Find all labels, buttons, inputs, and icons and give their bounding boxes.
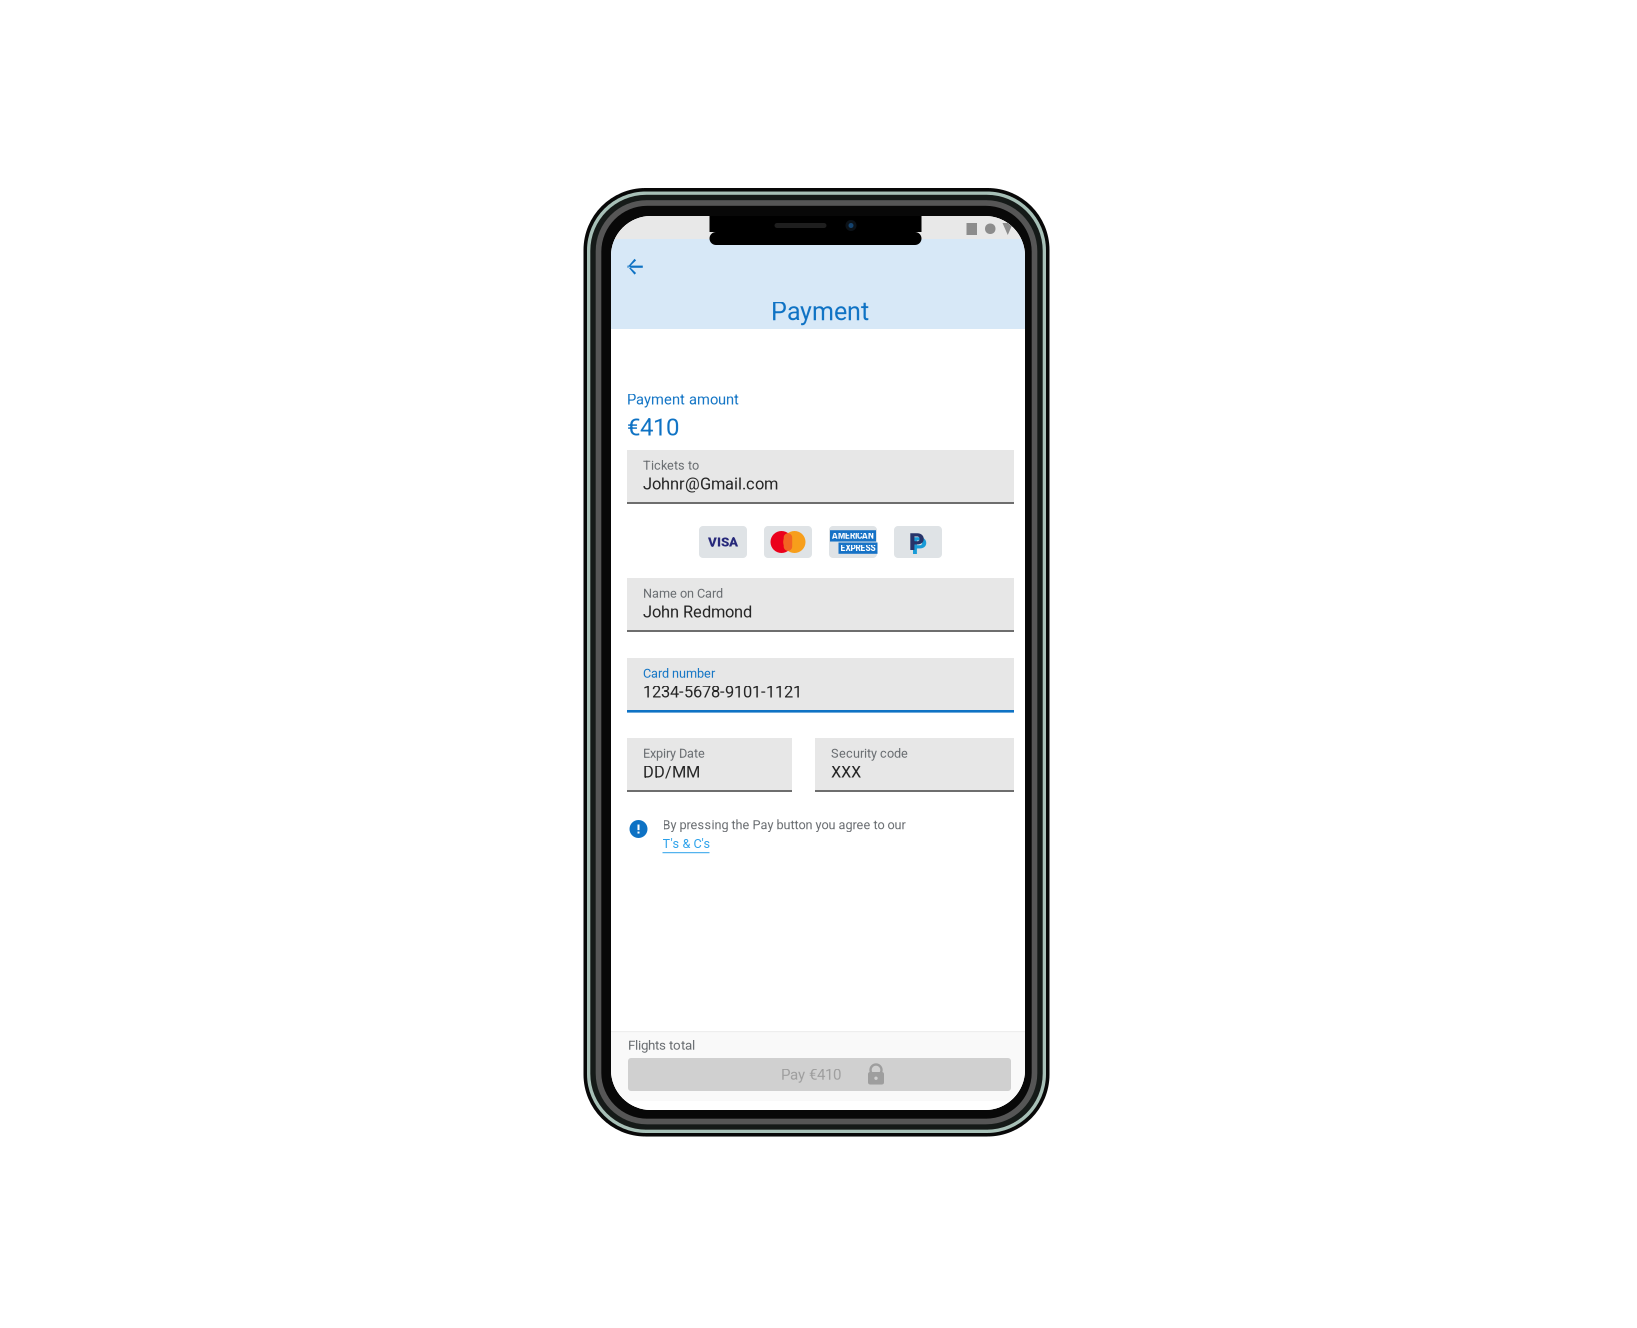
button[interactable]: Back — [626, 258, 643, 275]
staticText: €410 — [627, 413, 679, 441]
button[interactable]: Pay €410 — [628, 1058, 1011, 1091]
staticText: P — [909, 528, 925, 556]
staticText: Tickets to — [643, 458, 699, 473]
staticText: John Redmond — [643, 602, 752, 621]
staticText: Johnr@Gmail.com — [643, 474, 778, 493]
staticText: AMERICAN — [832, 531, 874, 541]
staticText: DD/MM — [643, 762, 700, 781]
staticText: Payment amount — [627, 391, 739, 408]
button[interactable]: Security code — [815, 738, 1014, 792]
staticText: 1234-5678-9101-1121 — [643, 682, 802, 701]
staticText: Name on Card — [643, 586, 723, 601]
button[interactable]: Visa — [699, 526, 747, 558]
staticText: Pay €410 — [781, 1066, 841, 1083]
staticText: P — [911, 532, 927, 560]
button[interactable]: Expiry Date — [627, 738, 792, 792]
staticText: VISA — [708, 534, 738, 550]
button[interactable]: PayPal — [894, 526, 942, 558]
button[interactable]: T's & C's — [662, 836, 710, 853]
staticText: Payment — [771, 297, 869, 326]
button[interactable]: Name on Card — [627, 578, 1014, 632]
staticText: Expiry Date — [643, 746, 705, 761]
staticText: By pressing the Pay button you agree to … — [662, 817, 905, 832]
button[interactable]: Mastercard — [764, 526, 812, 558]
button[interactable]: Card number — [627, 658, 1014, 713]
button[interactable]: Tickets to — [627, 450, 1014, 504]
staticText: Card number — [643, 666, 715, 681]
staticText: T's & C's — [662, 836, 710, 851]
staticText: EXPRESS — [840, 543, 875, 553]
staticText: XXX — [831, 762, 861, 781]
staticText: Security code — [831, 746, 908, 761]
staticText: Flights total — [628, 1037, 695, 1053]
button[interactable]: American Express — [829, 526, 877, 558]
